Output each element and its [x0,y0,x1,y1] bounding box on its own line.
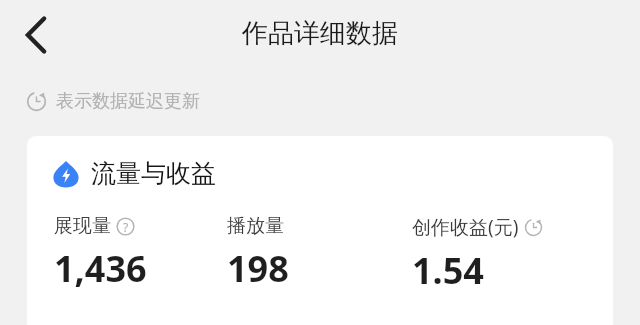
button[interactable]: 播放量 [227,214,412,293]
staticText: 198 [227,244,289,293]
staticText: 1,436 [54,244,147,293]
staticText: 表示数据延迟更新 [56,90,200,113]
button[interactable]: 表示数据延迟更新 [26,84,200,118]
button[interactable]: 创作收益(元) [412,214,613,295]
staticText: 作品详细数据 [242,17,398,50]
staticText: 创作收益(元) [412,214,519,240]
button[interactable]: Back [8,6,66,64]
staticText: ? [123,219,129,235]
staticText: 展现量 [54,214,111,238]
staticText: 流量与收益 [91,158,216,189]
button[interactable]: 流量与收益 [52,158,216,189]
staticText: 1.54 [412,246,484,295]
staticText: 播放量 [227,214,284,238]
button[interactable]: 展现量 [54,214,254,293]
